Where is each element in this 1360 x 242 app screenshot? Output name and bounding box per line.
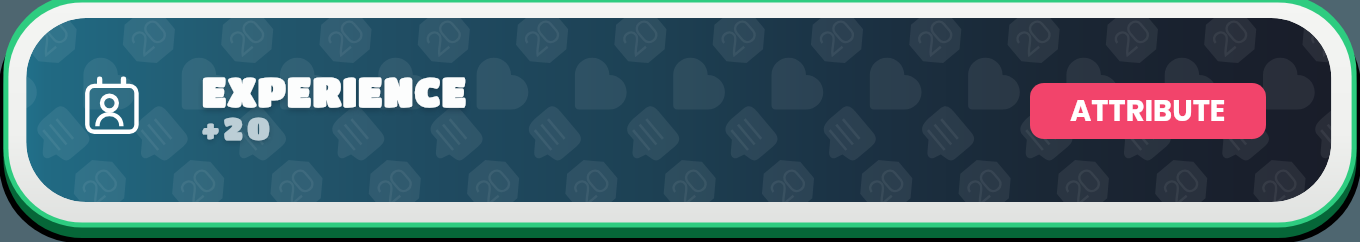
staticText: +20 — [202, 110, 275, 145]
button[interactable]: ATTRIBUTE — [1030, 83, 1266, 139]
staticText: EXPERIENCE — [202, 68, 468, 114]
staticText: ATTRIBUTE — [1070, 91, 1226, 132]
